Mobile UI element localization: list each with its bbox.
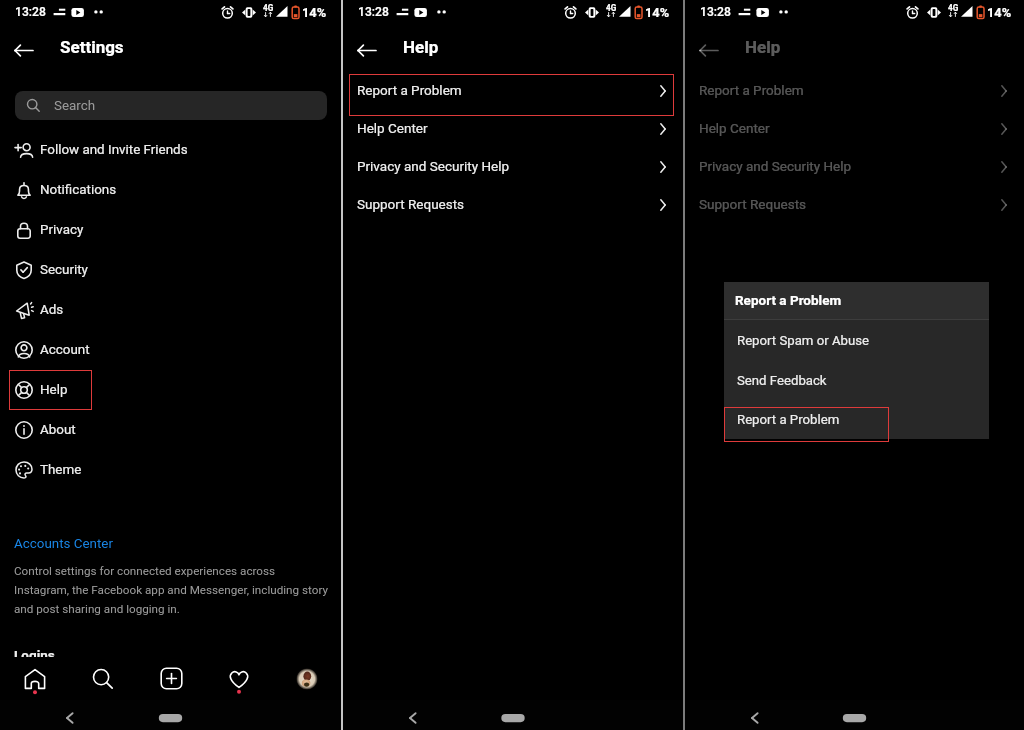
staticText: 4G [948,3,959,13]
button[interactable]: Home [0,657,69,700]
staticText: Help [745,37,781,57]
other: System navigation [0,700,341,730]
button[interactable]: Send Feedback [724,360,989,400]
staticText: Support Requests [357,196,465,212]
staticText: Support Requests [699,196,807,212]
staticText: Report a Problem [735,292,842,308]
button[interactable]: Help Center [343,109,683,147]
staticText: Search [54,98,96,114]
button[interactable]: Report a Problem [685,71,1024,109]
other: System navigation [343,700,683,730]
staticText: Send Feedback [737,373,827,388]
button[interactable]: Help [0,370,341,410]
button[interactable]: Back [6,31,42,67]
staticText: Settings [60,37,124,57]
button[interactable]: Search [15,91,327,120]
staticText: Theme [40,462,82,478]
button[interactable]: Account [0,330,341,370]
button[interactable]: About [0,410,341,450]
button[interactable]: Search [69,657,137,700]
staticText: Privacy [40,222,84,238]
staticText: Logins [14,647,55,657]
button[interactable]: Profile [273,657,341,700]
staticText: Report a Problem [737,412,840,427]
staticText: Privacy and Security Help [357,158,510,174]
button[interactable]: Theme [0,450,341,490]
staticText: 13:28 [15,5,46,19]
button[interactable]: Follow and Invite Friends [0,130,341,170]
button[interactable]: Report Spam or Abuse [724,320,989,360]
staticText: Privacy and Security Help [699,158,852,174]
staticText: Account [40,342,90,358]
staticText: Ads [40,302,64,318]
staticText: Security [40,262,88,278]
button[interactable]: Security [0,250,341,290]
staticText: Follow and Invite Friends [40,142,188,158]
staticText: Control settings for connected experienc… [14,564,340,616]
staticText: 4G [263,3,274,13]
other: System navigation [685,700,1024,730]
button[interactable]: Report a Problem [724,400,989,439]
button[interactable]: Activity [205,657,273,700]
button[interactable]: Privacy and Security Help [685,147,1024,185]
staticText: Help Center [357,120,428,136]
button[interactable]: Back [349,31,385,67]
button[interactable]: Back [691,31,727,67]
staticText: About [40,422,76,438]
staticText: 13:28 [700,5,731,19]
staticText: Help Center [699,120,770,136]
staticText: Accounts Center [14,536,114,552]
button[interactable]: Support Requests [685,185,1024,223]
staticText: Report a Problem [699,82,804,98]
staticText: 13:28 [358,5,389,19]
staticText: Help [403,37,439,57]
button[interactable]: Create [137,657,205,700]
button[interactable]: Help Center [685,109,1024,147]
button[interactable]: Privacy [0,210,341,250]
button[interactable]: Privacy and Security Help [343,147,683,185]
button[interactable]: Support Requests [343,185,683,223]
staticText: 4G [606,3,617,13]
staticText: 14% [645,5,670,20]
button[interactable]: Notifications [0,170,341,210]
button[interactable]: Ads [0,290,341,330]
staticText: Report a Problem [357,82,462,98]
staticText: 14% [987,5,1012,20]
staticText: Notifications [40,182,117,198]
staticText: Report Spam or Abuse [737,333,870,348]
staticText: 14% [302,5,327,20]
button[interactable]: Report a Problem [343,71,683,109]
staticText: Help [40,382,68,398]
button[interactable]: Accounts Center [14,535,114,553]
